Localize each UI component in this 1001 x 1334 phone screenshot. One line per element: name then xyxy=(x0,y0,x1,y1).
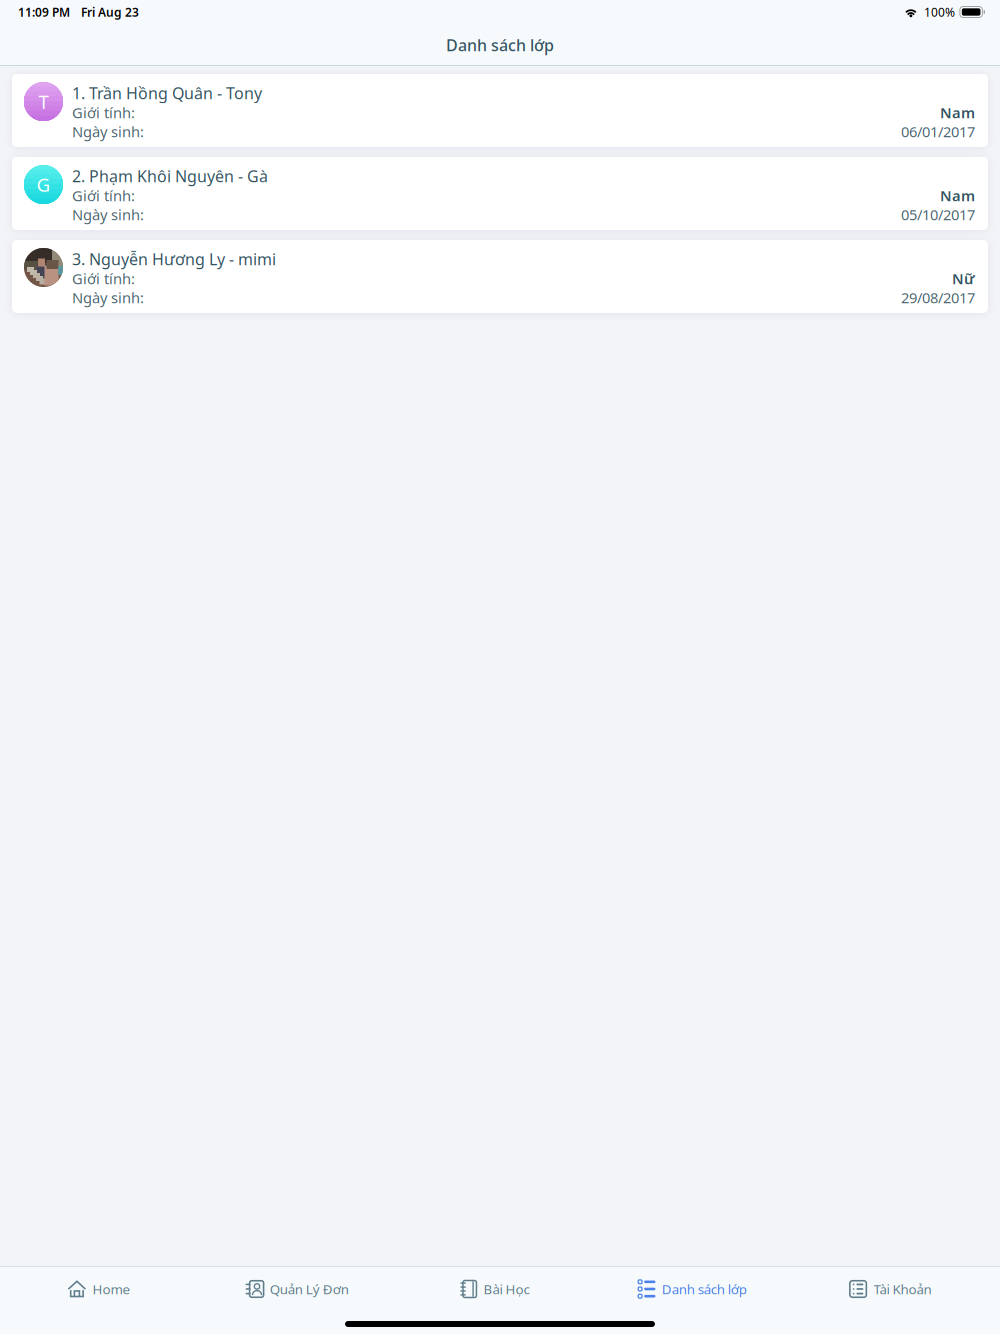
staticText: Giới tính: xyxy=(72,186,135,205)
staticText: Ngày sinh: xyxy=(72,288,144,307)
button[interactable]: Tài Khoản xyxy=(791,1265,989,1317)
button[interactable]: Home xyxy=(0,1265,198,1317)
staticText: Giới tính: xyxy=(72,103,135,122)
staticText: Quản Lý Đơn xyxy=(270,1280,349,1298)
staticText: Nam xyxy=(940,186,975,205)
staticText: Tài Khoản xyxy=(874,1280,932,1298)
staticText: 1. Trần Hồng Quân - Tony xyxy=(72,82,262,104)
staticText: Home xyxy=(92,1280,130,1298)
staticText: 06/01/2017 xyxy=(901,122,975,141)
staticText: 2. Phạm Khôi Nguyên - Gà xyxy=(72,165,268,187)
staticText: 3. Nguyễn Hương Ly - mimi xyxy=(72,248,276,270)
staticText: Nam xyxy=(940,103,975,122)
staticText: Ngày sinh: xyxy=(72,122,144,141)
staticText: T xyxy=(38,89,48,114)
staticText: Danh sách lớp xyxy=(662,1280,747,1298)
staticText: Giới tính: xyxy=(72,269,135,288)
staticText: 05/10/2017 xyxy=(901,205,975,224)
staticText: Bài Học xyxy=(483,1280,529,1298)
button[interactable]: 3. Nguyễn Hương Ly - mimi xyxy=(12,240,988,313)
button[interactable]: Quản Lý Đơn xyxy=(198,1265,396,1317)
button[interactable]: Bài Học xyxy=(396,1265,593,1317)
staticText: Fri Aug 23 xyxy=(81,4,139,20)
button[interactable]: G xyxy=(12,157,988,230)
staticText: Ngày sinh: xyxy=(72,205,144,224)
staticText: Danh sách lớp xyxy=(446,34,554,56)
button[interactable]: Danh sách lớp xyxy=(593,1265,791,1317)
staticText: Nữ xyxy=(952,269,975,288)
staticText: G xyxy=(36,172,50,197)
button[interactable]: T xyxy=(12,74,988,147)
staticText: 100% xyxy=(924,4,955,20)
staticText: 29/08/2017 xyxy=(901,288,975,307)
staticText: 11:09 PM xyxy=(18,4,70,20)
